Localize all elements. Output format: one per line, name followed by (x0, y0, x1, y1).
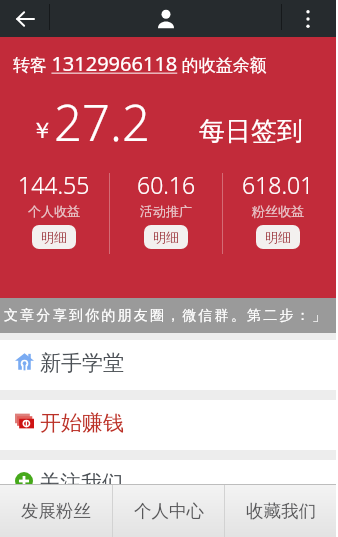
staticText: 144.55 (18, 169, 90, 200)
staticText: 个人中心 (134, 500, 204, 522)
staticText: 明细 (41, 229, 67, 245)
staticText: 明细 (265, 229, 291, 245)
staticText: 粉丝收益 (252, 203, 304, 219)
staticText: 文章分享到你的朋友圈，微信群。第二步：」 (3, 307, 327, 325)
staticText: 关注我们 (39, 470, 123, 496)
button[interactable]: 个人中心 (113, 485, 224, 537)
button[interactable]: 明细 (144, 225, 188, 249)
button[interactable]: 开始赚钱 (0, 400, 336, 450)
staticText: 开始赚钱 (40, 410, 124, 436)
staticText: 活动推广 (140, 203, 192, 219)
button[interactable]: More options (288, 0, 328, 37)
button[interactable]: Profile (146, 0, 186, 37)
staticText: ￥ (31, 117, 53, 145)
button[interactable]: 明细 (256, 225, 300, 249)
button[interactable]: 收藏我们 (225, 485, 336, 537)
staticText: 发展粉丝 (21, 500, 91, 522)
button[interactable]: 文章分享到你的朋友圈，微信群。第二步：」 (0, 298, 336, 333)
staticText: 明细 (153, 229, 179, 245)
button[interactable]: 发展粉丝 (0, 485, 112, 537)
staticText: 60.16 (137, 169, 196, 200)
staticText: 新手学堂 (40, 350, 124, 376)
staticText: 收藏我们 (246, 500, 316, 522)
staticText: 个人收益 (28, 203, 80, 219)
staticText: 27.2 (54, 89, 150, 156)
staticText: 每日签到 (199, 115, 303, 148)
staticText: 转客 13129966118 的收益余额 (13, 50, 267, 77)
button[interactable]: 关注我们 (0, 460, 336, 510)
staticText: 618.01 (242, 169, 314, 200)
button[interactable]: 明细 (32, 225, 76, 249)
button[interactable]: 新手学堂 (0, 340, 336, 390)
button[interactable]: 每日签到 (199, 115, 303, 148)
button[interactable]: Back (0, 0, 49, 37)
